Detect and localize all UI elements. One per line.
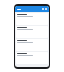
button[interactable] — [16, 13, 48, 25]
button[interactable] — [16, 26, 48, 38]
button[interactable] — [16, 52, 48, 64]
button[interactable] — [16, 39, 48, 51]
